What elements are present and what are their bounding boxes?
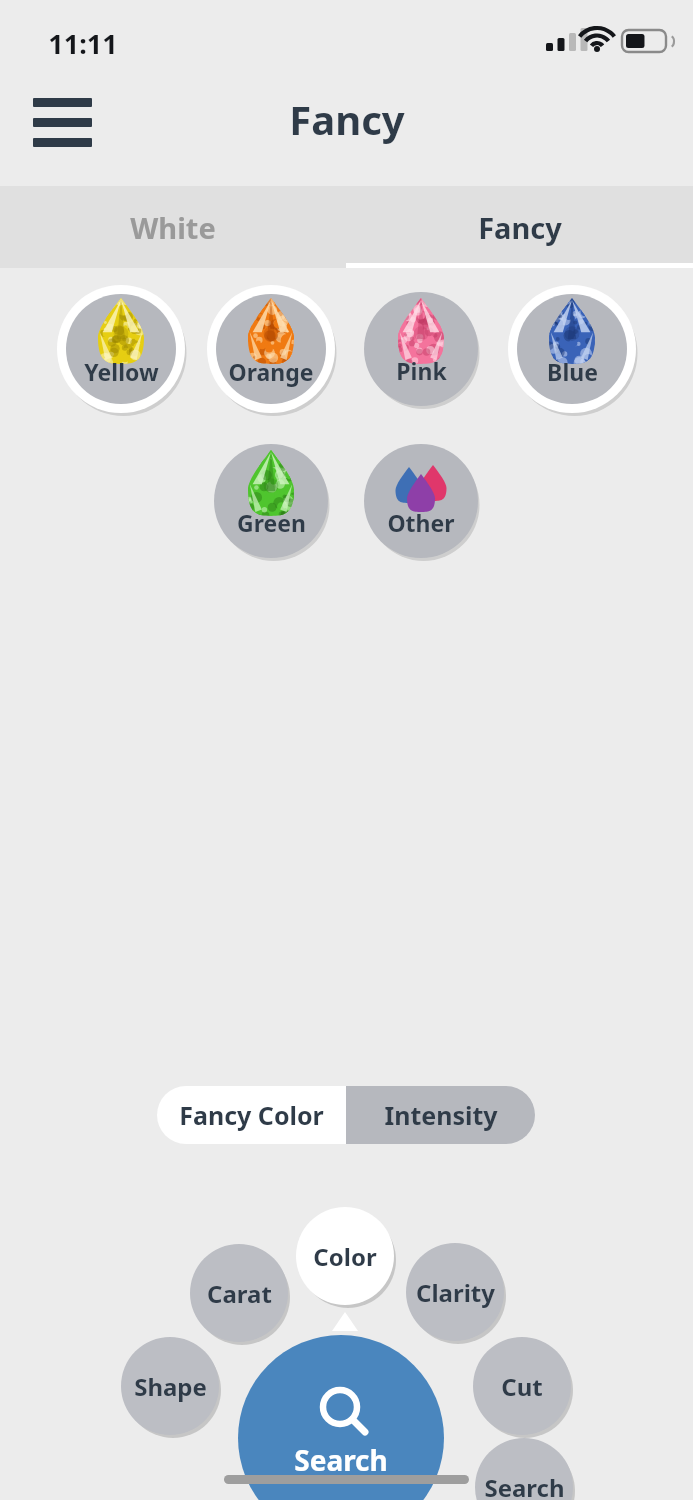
staticText: Intensity — [384, 1098, 498, 1132]
button[interactable]: Green — [214, 444, 328, 558]
staticText: Green — [237, 507, 306, 538]
button[interactable]: Orange — [207, 285, 335, 413]
button[interactable]: Shape — [121, 1337, 219, 1435]
button[interactable]: Menu — [26, 88, 99, 148]
button[interactable]: White — [0, 186, 346, 268]
button[interactable]: Cut — [473, 1337, 571, 1435]
staticText: Orange — [228, 356, 314, 387]
staticText: Blue — [547, 356, 598, 387]
button[interactable]: Clarity — [406, 1243, 504, 1341]
staticText: White — [130, 208, 216, 247]
staticText: 11:11 — [48, 25, 118, 62]
button[interactable]: Fancy Color — [157, 1086, 346, 1144]
staticText: Fancy — [289, 92, 405, 146]
staticText: Yellow — [84, 356, 159, 387]
staticText: Cut — [501, 1370, 543, 1403]
button[interactable]: Intensity — [346, 1086, 535, 1144]
button[interactable]: Other — [364, 444, 478, 558]
button[interactable]: Pink — [364, 292, 478, 406]
button[interactable]: Carat — [190, 1244, 288, 1342]
button[interactable]: Color — [296, 1207, 394, 1305]
button[interactable]: Search — [238, 1335, 444, 1500]
staticText: Other — [387, 507, 455, 538]
staticText: Fancy Color — [179, 1098, 324, 1132]
button[interactable]: Search — [475, 1438, 573, 1500]
staticText: Carat — [207, 1277, 272, 1310]
staticText: Search — [294, 1441, 388, 1479]
button[interactable]: Blue — [508, 285, 636, 413]
staticText: Fancy — [478, 208, 562, 247]
staticText: Color — [313, 1240, 377, 1273]
button[interactable]: Fancy — [346, 186, 693, 268]
staticText: Shape — [134, 1370, 207, 1403]
staticText: Clarity — [416, 1276, 495, 1309]
button[interactable]: Yellow — [57, 285, 185, 413]
staticText: Search — [484, 1471, 565, 1500]
staticText: Pink — [396, 355, 447, 386]
